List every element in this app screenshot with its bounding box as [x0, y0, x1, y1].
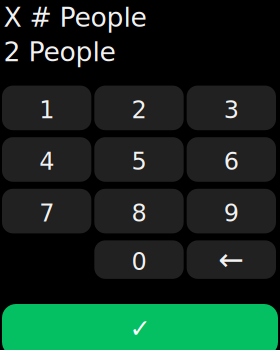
button[interactable]: 3: [187, 86, 276, 130]
button[interactable]: 2: [94, 86, 184, 130]
staticText: 0: [131, 248, 146, 276]
staticText: 3: [224, 96, 239, 124]
button[interactable]: Delete: [187, 240, 276, 279]
staticText: 4: [39, 147, 54, 175]
button[interactable]: 9: [187, 189, 276, 233]
staticText: 1: [39, 96, 54, 124]
button[interactable]: 7: [2, 189, 91, 233]
button[interactable]: Confirm: [2, 304, 278, 350]
button[interactable]: 8: [94, 189, 184, 233]
staticText: 7: [39, 199, 54, 227]
staticText: 8: [131, 199, 146, 227]
button[interactable]: 0: [94, 240, 184, 279]
button[interactable]: 5: [94, 137, 184, 182]
button[interactable]: 4: [2, 137, 91, 182]
staticText: ✓: [129, 314, 150, 343]
staticText: 5: [131, 147, 146, 175]
button[interactable]: 6: [187, 137, 276, 182]
staticText: 6: [224, 147, 239, 175]
staticText: 2: [131, 96, 146, 124]
staticText: 9: [224, 199, 239, 227]
staticText: X # People: [3, 2, 146, 33]
staticText: ←: [218, 242, 244, 277]
staticText: 2 People: [3, 36, 115, 67]
button[interactable]: 1: [2, 86, 91, 130]
